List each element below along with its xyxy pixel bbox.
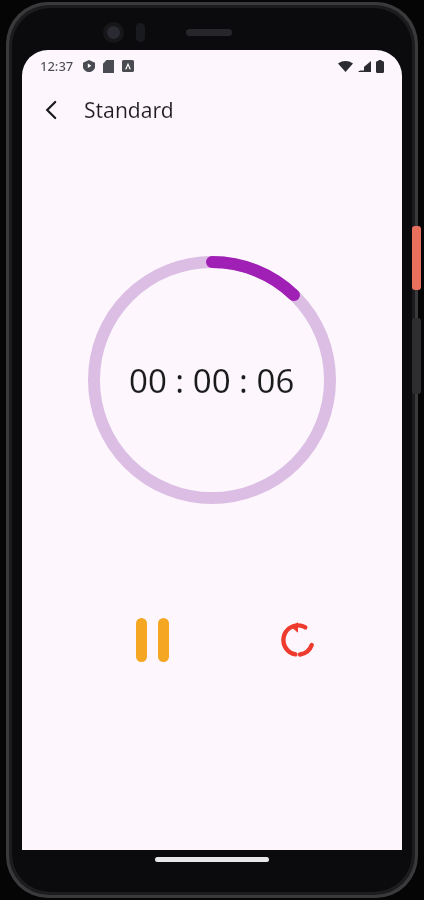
button[interactable]: Back — [30, 88, 74, 132]
button[interactable]: Pause — [116, 604, 188, 676]
button[interactable]: Reset — [262, 604, 334, 676]
staticText: 12:37 — [40, 57, 74, 75]
staticText: Standard — [84, 96, 174, 125]
staticText: 00 : 00 : 06 — [129, 358, 295, 403]
